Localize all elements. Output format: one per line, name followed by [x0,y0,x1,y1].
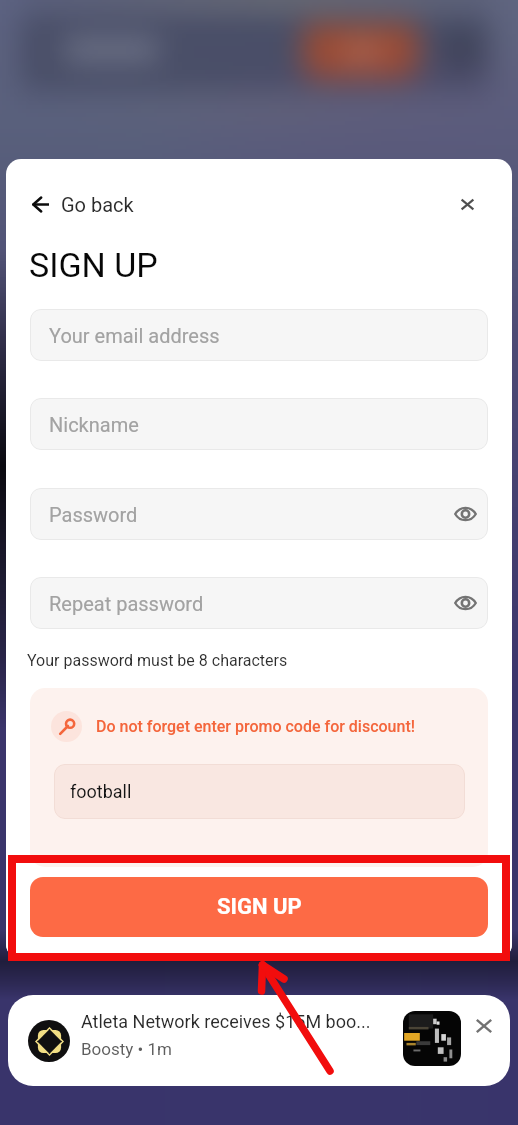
button[interactable]: Your email address [30,309,488,361]
button[interactable]: Show password [449,498,481,530]
button[interactable]: Show password [449,587,481,619]
button[interactable]: Dismiss [462,1004,506,1048]
staticText: Boosty • 1m [81,1039,172,1059]
staticText: Atleta Network receives $15M boo... [81,1011,371,1032]
button[interactable]: Close [445,182,489,226]
staticText: Password [49,503,138,526]
button[interactable]: Atleta Network receives $15M boo... [8,995,510,1086]
staticText: Go back [61,193,134,216]
staticText: football [70,781,132,802]
staticText: SIGN UP [29,245,158,285]
staticText: Your email address [49,324,220,347]
staticText: Your password must be 8 characters [27,651,288,670]
staticText: Do not forget enter promo code for disco… [96,717,415,736]
button[interactable]: Go back [32,193,134,216]
button[interactable]: Nickname [30,398,488,450]
staticText: Nickname [49,413,139,436]
staticText: SIGN UP [217,894,302,920]
button[interactable]: SIGN UP [30,877,488,937]
button[interactable]: football [54,764,465,819]
staticText: Repeat password [49,592,204,615]
button[interactable]: Password [30,488,488,540]
button[interactable]: Repeat password [30,577,488,629]
